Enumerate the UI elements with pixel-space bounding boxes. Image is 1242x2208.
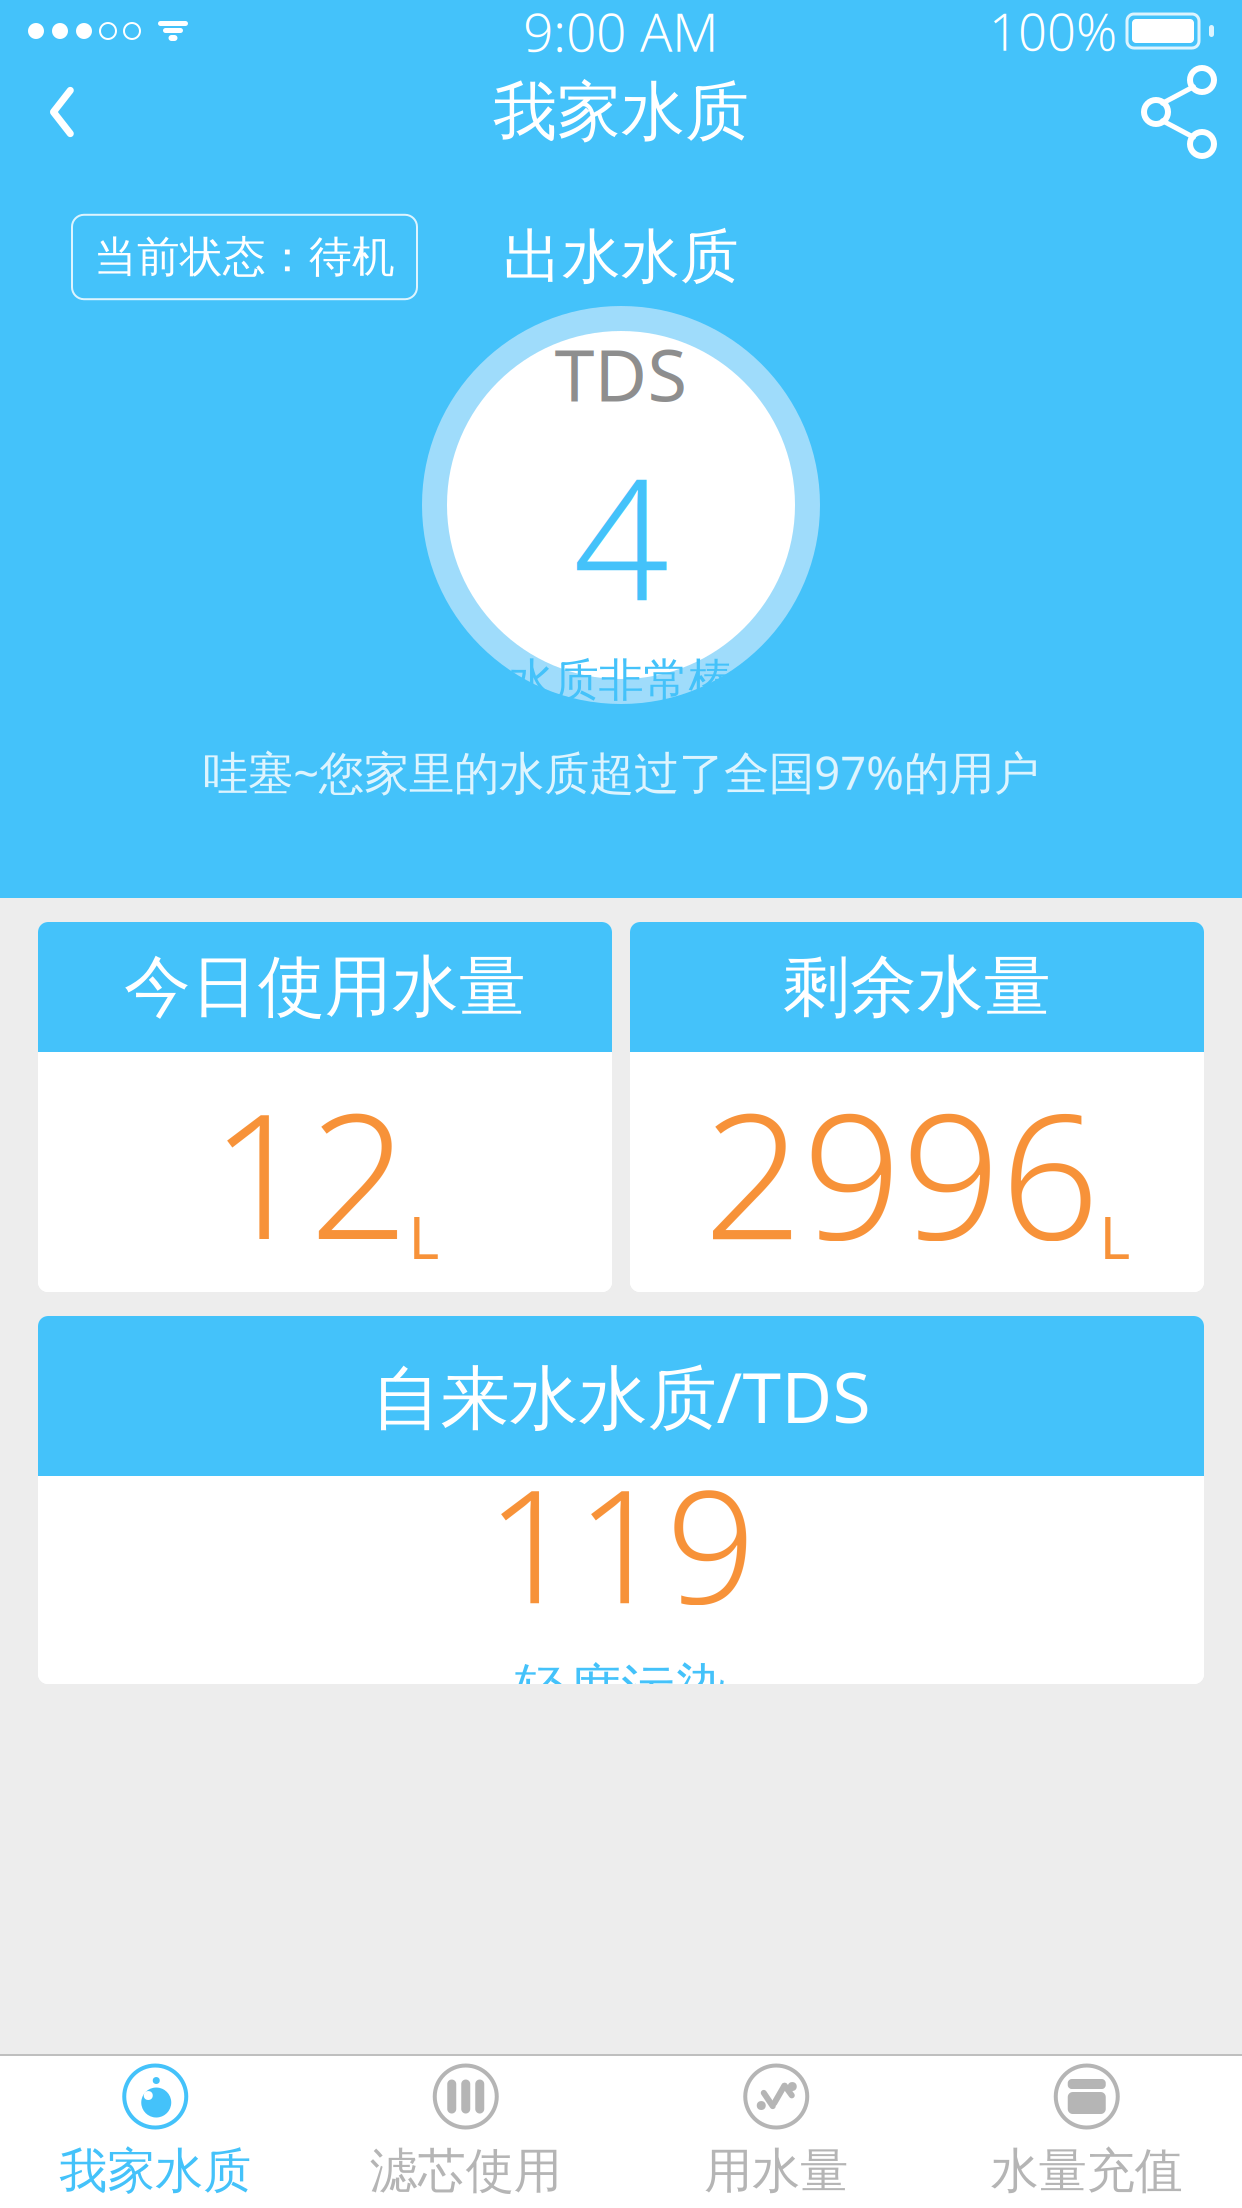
staticText: 12	[210, 1057, 408, 1287]
staticText: 我家水质	[59, 2141, 251, 2200]
staticText: 水质非常棒	[508, 652, 733, 708]
button[interactable]: Back	[14, 64, 110, 160]
staticText: 轻度污染	[515, 1657, 727, 1722]
staticText: 9:00 AM	[523, 0, 719, 66]
button[interactable]: 今日使用水量	[38, 922, 612, 1292]
staticText: 100%	[989, 0, 1117, 65]
staticText: 今日使用水量	[124, 946, 526, 1028]
staticText: 我家水质	[493, 73, 749, 151]
staticText: 水量充值	[991, 2141, 1183, 2200]
button[interactable]: 自来水水质/TDS	[38, 1316, 1204, 1684]
staticText: 4	[573, 423, 669, 646]
staticText: 当前状态：待机	[94, 231, 395, 283]
button[interactable]: Share	[1132, 64, 1228, 160]
button[interactable]: 滤芯使用	[310, 2056, 621, 2208]
staticText: 哇塞~您家里的水质超过了全国97%的用户	[203, 742, 1039, 802]
staticText: 自来水水质/TDS	[371, 1350, 870, 1442]
staticText: 剩余水量	[783, 946, 1051, 1028]
staticText: TDS	[554, 326, 687, 421]
staticText: L	[408, 1197, 439, 1275]
staticText: 滤芯使用	[370, 2141, 562, 2200]
button[interactable]: 水量充值	[931, 2056, 1242, 2208]
button[interactable]: 用水量	[621, 2056, 931, 2208]
button[interactable]: 我家水质	[0, 2056, 310, 2208]
staticText: L	[1099, 1197, 1130, 1275]
button[interactable]: 剩余水量	[630, 922, 1204, 1292]
staticText: 2996	[703, 1057, 1099, 1287]
staticText: 出水水质	[503, 221, 739, 293]
staticText: 119	[486, 1438, 756, 1647]
staticText: 用水量	[704, 2141, 848, 2200]
